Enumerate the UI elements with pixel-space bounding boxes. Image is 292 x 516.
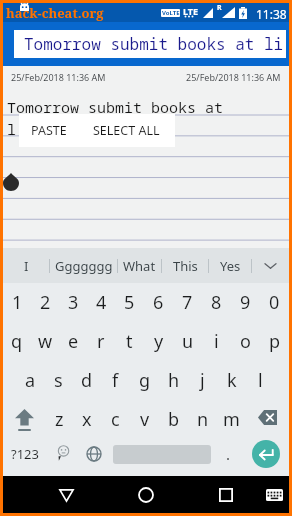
staticText: 9 [240, 290, 251, 315]
button[interactable]: Change language [78, 439, 109, 469]
button[interactable]: t [115, 322, 144, 361]
staticText: q [11, 329, 23, 354]
staticText: R [217, 3, 222, 13]
button[interactable]: PASTE [19, 114, 78, 147]
staticText: 7 [182, 290, 193, 315]
button[interactable]: m [217, 400, 246, 439]
staticText: 5 [124, 290, 135, 315]
button[interactable]: j [188, 361, 217, 400]
button[interactable]: 1 [3, 283, 31, 322]
button[interactable]: o [231, 322, 260, 361]
staticText: This [173, 257, 198, 275]
button[interactable]: l [246, 361, 275, 400]
button[interactable]: Ggggggg [50, 248, 117, 283]
staticText: 25/Feb/2018 11:36 AM [186, 71, 281, 83]
button[interactable]: Tomorrow submit books at li [14, 30, 286, 58]
staticText: h [168, 368, 180, 393]
staticText: k [227, 368, 237, 393]
button[interactable]: I [3, 248, 49, 283]
button[interactable]: . [214, 439, 243, 469]
staticText: o [240, 329, 251, 354]
button[interactable]: Home [128, 477, 164, 513]
button[interactable]: e [59, 322, 87, 361]
staticText: u [182, 329, 194, 354]
staticText: j [200, 368, 205, 393]
button[interactable]: d [72, 361, 101, 400]
staticText: Tomorrow submit books at l [7, 97, 224, 139]
staticText: s [54, 368, 63, 393]
staticText: What [123, 257, 156, 275]
button[interactable]: Space [109, 439, 214, 469]
button[interactable]: g [130, 361, 159, 400]
staticText: Ggggggg [55, 257, 113, 275]
button[interactable]: u [173, 322, 202, 361]
button[interactable]: Back [48, 477, 84, 513]
staticText: 11:38 [256, 6, 287, 22]
button[interactable]: w [31, 322, 59, 361]
button[interactable]: 9 [231, 283, 260, 322]
staticText: d [81, 368, 93, 393]
staticText: 1 [12, 290, 23, 315]
button[interactable]: b [159, 400, 188, 439]
staticText: v [140, 407, 150, 432]
staticText: 2 [40, 290, 51, 315]
staticText: Tomorrow submit books at li [24, 33, 284, 55]
staticText: PASTE [31, 122, 67, 139]
button[interactable]: p [260, 322, 289, 361]
button[interactable]: 8 [202, 283, 231, 322]
button[interactable]: k [217, 361, 246, 400]
staticText: 8 [211, 290, 222, 315]
staticText: SELECT ALL [93, 122, 160, 139]
staticText: LTE [183, 5, 199, 17]
button[interactable]: 3 [59, 283, 87, 322]
button[interactable]: a [16, 361, 44, 400]
button[interactable]: 7 [173, 283, 202, 322]
button[interactable]: Switch keyboard [256, 477, 292, 513]
button[interactable]: i [202, 322, 231, 361]
button[interactable]: 6 [144, 283, 173, 322]
staticText: p [269, 329, 281, 354]
button[interactable]: This [162, 248, 208, 283]
staticText: b [168, 407, 180, 432]
button[interactable]: x [73, 400, 101, 439]
button[interactable]: ?123 [3, 439, 47, 469]
button[interactable]: Emoji and comma [47, 439, 78, 469]
button[interactable]: 5 [115, 283, 144, 322]
button[interactable]: 2 [31, 283, 59, 322]
button[interactable]: z [45, 400, 73, 439]
button[interactable]: What [118, 248, 161, 283]
button[interactable]: s [44, 361, 72, 400]
staticText: . [226, 444, 231, 464]
staticText: f [112, 368, 119, 393]
button[interactable]: h [159, 361, 188, 400]
button[interactable]: y [144, 322, 173, 361]
button[interactable]: Backspace [246, 400, 289, 439]
staticText: VoLTE [162, 9, 180, 17]
staticText: w [38, 329, 53, 354]
staticText: g [139, 368, 151, 393]
button[interactable]: 0 [260, 283, 289, 322]
staticText: y [154, 329, 164, 354]
staticText: ?123 [11, 445, 39, 463]
staticText: m [223, 407, 240, 432]
button[interactable]: Yes [209, 248, 251, 283]
staticText: r [97, 329, 105, 354]
staticText: Yes [220, 257, 241, 275]
button[interactable]: n [188, 400, 217, 439]
button[interactable]: SELECT ALL [78, 114, 175, 147]
button[interactable]: 4 [87, 283, 115, 322]
button[interactable]: Enter [243, 439, 289, 469]
staticText: n [197, 407, 209, 432]
button[interactable]: More suggestions [252, 248, 289, 283]
button[interactable]: Recents [208, 477, 244, 513]
button[interactable]: c [101, 400, 130, 439]
button[interactable]: Shift [3, 400, 45, 439]
staticText: a [25, 368, 36, 393]
staticText: hack-cheat.org [6, 4, 104, 22]
button[interactable]: v [130, 400, 159, 439]
button[interactable]: q [3, 322, 31, 361]
staticText: i [214, 329, 219, 354]
staticText: 4 [96, 290, 107, 315]
button[interactable]: r [87, 322, 115, 361]
button[interactable]: f [101, 361, 130, 400]
